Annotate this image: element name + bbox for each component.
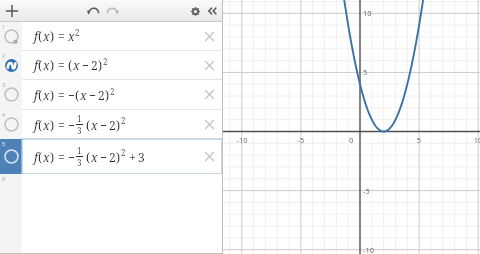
staticText: 3 (138, 149, 145, 165)
staticText: ( (86, 149, 91, 165)
staticText: ( (38, 117, 43, 133)
staticText: f (34, 87, 38, 103)
button[interactable]: Toggle graph 4 (0, 110, 222, 139)
staticText: f (34, 117, 38, 133)
staticText: 3 (77, 125, 82, 136)
staticText: 2 (75, 27, 80, 38)
staticText: 2 (2, 52, 6, 59)
staticText: -10 (233, 135, 251, 145)
staticText: 3 (2, 81, 6, 88)
staticText: 0 (349, 135, 354, 145)
button[interactable]: Redo (106, 4, 120, 18)
staticText: 5 (2, 140, 6, 147)
staticText: 1 (77, 145, 82, 156)
button[interactable]: Toggle graph 4 (0, 110, 22, 139)
staticText: x (43, 28, 50, 44)
staticText: f (34, 57, 38, 73)
staticText: ) (50, 87, 55, 103)
staticText: ) (116, 149, 121, 165)
staticText: x (80, 87, 87, 103)
staticText: ) (116, 117, 121, 133)
staticText: − (68, 117, 75, 133)
staticText: ( (38, 28, 43, 44)
staticText: 1 (2, 23, 6, 30)
staticText: 5 (363, 67, 368, 77)
staticText: 3 (77, 157, 82, 168)
staticText: ) (105, 87, 110, 103)
button[interactable]: Toggle graph 1 (0, 22, 222, 50)
staticText: = (58, 57, 65, 73)
staticText: 2 (109, 117, 116, 133)
staticText: 2 (110, 86, 115, 97)
staticText: − (68, 149, 75, 165)
staticText: 5 (410, 135, 428, 145)
staticText: − (82, 57, 89, 73)
staticText: 6 (2, 175, 6, 182)
button[interactable]: Toggle graph 5 (0, 139, 222, 174)
staticText: 10 (363, 8, 372, 18)
staticText: ( (38, 87, 43, 103)
staticText: ) (50, 149, 55, 165)
staticText: ( (38, 149, 43, 165)
staticText: ) (50, 57, 55, 73)
button[interactable]: Delete expression 1 (203, 30, 216, 43)
staticText: -10 (363, 245, 374, 254)
button[interactable]: Delete expression 5 (203, 150, 216, 163)
staticText: 2 (98, 87, 105, 103)
staticText: − (100, 149, 107, 165)
staticText: ) (50, 117, 55, 133)
button[interactable]: Toggle graph 5 (0, 139, 22, 174)
staticText: ( (68, 57, 73, 73)
staticText: 1 (77, 113, 82, 124)
staticText: f (34, 28, 38, 44)
button[interactable]: Delete expression 2 (203, 59, 216, 72)
staticText: x (43, 149, 50, 165)
staticText: = (58, 87, 65, 103)
staticText: ) (50, 28, 55, 44)
staticText: x (68, 28, 75, 44)
button[interactable]: Toggle graph 2 (0, 51, 222, 79)
staticText: x (43, 117, 50, 133)
staticText: + (129, 149, 136, 165)
staticText: − (68, 87, 75, 103)
button[interactable]: Toggle graph 3 (0, 80, 22, 109)
button[interactable]: 6 (0, 174, 222, 194)
staticText: 2 (121, 115, 126, 126)
staticText: f (34, 149, 38, 165)
staticText: 2 (91, 57, 98, 73)
button[interactable]: Settings (190, 6, 201, 17)
staticText: 2 (121, 147, 126, 158)
button[interactable]: Delete expression 3 (203, 88, 216, 101)
staticText: ( (38, 57, 43, 73)
staticText: x (91, 149, 98, 165)
button[interactable]: Toggle graph 1 (0, 22, 22, 50)
staticText: -5 (363, 186, 370, 196)
staticText: x (43, 87, 50, 103)
staticText: ) (98, 57, 103, 73)
staticText: = (58, 28, 65, 44)
staticText: 10 (469, 135, 480, 145)
staticText: x (43, 57, 50, 73)
staticText: x (73, 57, 80, 73)
button[interactable]: Collapse panel (207, 5, 219, 17)
staticText: 2 (103, 56, 108, 67)
staticText: = (58, 117, 65, 133)
staticText: − (89, 87, 96, 103)
button[interactable]: Delete expression 4 (203, 118, 216, 131)
staticText: -5 (292, 135, 310, 145)
staticText: ( (75, 87, 80, 103)
staticText: = (58, 149, 65, 165)
button[interactable]: Toggle graph 3 (0, 80, 222, 109)
staticText: − (100, 117, 107, 133)
button[interactable]: Add expression (3, 2, 21, 20)
button[interactable]: Toggle graph 2 (0, 51, 22, 79)
staticText: ( (86, 117, 91, 133)
staticText: 4 (2, 111, 6, 118)
button[interactable]: Undo (86, 4, 100, 18)
staticText: 2 (109, 149, 116, 165)
staticText: x (91, 117, 98, 133)
